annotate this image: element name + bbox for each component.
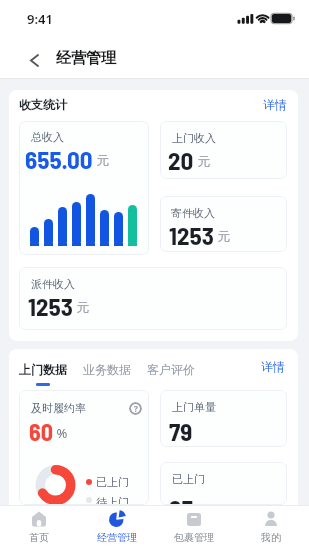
staticText: ? — [134, 403, 138, 414]
button[interactable]: 经营管理 — [78, 505, 155, 550]
staticText: 20 — [168, 145, 194, 175]
button[interactable]: 首页 — [0, 505, 78, 550]
staticText: 上门单量 — [172, 400, 216, 414]
button[interactable]: 上门数据 — [19, 362, 67, 386]
button[interactable]: ? — [129, 402, 142, 415]
staticText: 9:41 — [27, 10, 53, 28]
staticText: 1253 — [28, 291, 73, 321]
staticText: 60 — [29, 417, 53, 446]
staticText: 63 — [169, 493, 194, 505]
staticText: 收支统计 — [19, 97, 67, 112]
staticText: 首页 — [29, 531, 49, 544]
staticText: 总收入 — [31, 130, 64, 144]
staticText: 上门收入 — [172, 131, 216, 145]
staticText: 包裹管理 — [174, 531, 214, 544]
staticText: 经营管理 — [97, 531, 137, 544]
button[interactable]: 我的 — [232, 505, 309, 550]
staticText: 及时履约率 — [31, 401, 86, 415]
button[interactable]: 客户评价 — [147, 362, 195, 377]
staticText: 655.00 — [25, 144, 93, 174]
staticText: 元 — [194, 152, 211, 170]
button[interactable] — [20, 46, 48, 74]
button[interactable]: 包裹管理 — [155, 505, 232, 550]
staticText: % — [53, 424, 68, 442]
staticText: 上门数据 — [19, 362, 67, 377]
staticText: 元 — [93, 151, 110, 169]
staticText: 元 — [73, 298, 90, 316]
staticText: 派件收入 — [31, 277, 75, 291]
button[interactable]: 详情 — [263, 97, 287, 112]
staticText: 元 — [214, 227, 231, 245]
staticText: 我的 — [261, 531, 281, 544]
button[interactable]: 业务数据 — [83, 362, 131, 377]
button[interactable]: 详情 — [261, 359, 285, 374]
staticText: 经营管理 — [56, 49, 116, 68]
staticText: 寄件收入 — [171, 206, 215, 220]
staticText: 已上门 — [172, 472, 205, 486]
staticText: 待上门 — [96, 495, 129, 505]
staticText: 1253 — [169, 220, 214, 250]
staticText: 79 — [169, 416, 193, 446]
staticText: 已上门 — [96, 475, 129, 489]
